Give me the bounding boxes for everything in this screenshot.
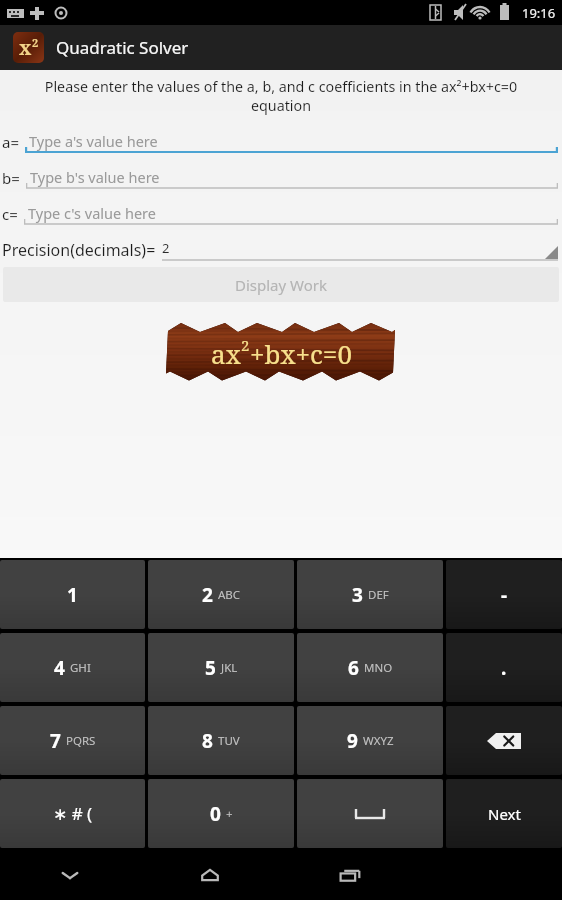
staticText: 5 [205, 655, 216, 681]
button[interactable]: ∗ # ( [0, 779, 145, 848]
staticText: c= [2, 204, 18, 224]
button[interactable]: Precision 2 [162, 234, 558, 261]
staticText: 9 [347, 728, 358, 754]
staticText: - [501, 582, 508, 608]
staticText: Type b's value here [30, 167, 160, 187]
button[interactable]: Home [140, 850, 280, 900]
staticText: ABC [218, 587, 241, 603]
button[interactable]: 3 DEF [297, 560, 443, 629]
staticText: + [226, 806, 233, 822]
staticText: Display Work [235, 275, 327, 295]
staticText: 1 [67, 582, 78, 608]
button[interactable]: 6 MNO [297, 633, 443, 702]
staticText: 2 [241, 335, 250, 355]
staticText: Precision(decimals)= [2, 239, 156, 261]
staticText: ∗ # ( [53, 802, 93, 825]
staticText: +bx+c=0 [250, 336, 352, 371]
button[interactable]: Type c's value here [24, 196, 558, 232]
button[interactable]: Recent apps [280, 850, 421, 900]
button[interactable]: 1 [0, 560, 145, 629]
staticText: 3 [352, 582, 363, 608]
button[interactable]: Hide keyboard [0, 850, 140, 900]
button[interactable]: 4 GHI [0, 633, 145, 702]
button[interactable]: 0 + [148, 779, 294, 848]
staticText: 2 [162, 239, 170, 257]
staticText: a= [2, 132, 19, 152]
button[interactable]: 2 ABC [148, 560, 294, 629]
staticText: Type a's value here [29, 131, 158, 151]
staticText: DEF [368, 587, 389, 603]
button[interactable]: 7 PQRS [0, 706, 145, 775]
staticText: GHI [70, 660, 91, 676]
staticText: MNO [364, 660, 393, 676]
staticText: 19:16 [522, 4, 556, 22]
button[interactable]: Type a's value here [25, 124, 558, 160]
staticText: Quadratic Solver [56, 36, 189, 59]
staticText: b= [2, 168, 20, 188]
staticText: Type c's value here [28, 203, 156, 223]
button[interactable]: Space [297, 779, 443, 848]
staticText: x [19, 35, 32, 61]
staticText: Next [488, 804, 521, 824]
staticText: 2 [32, 35, 39, 50]
button[interactable]: 5 JKL [148, 633, 294, 702]
staticText: 2 [202, 582, 213, 608]
button[interactable]: Display Work [3, 267, 559, 302]
staticText: PQRS [66, 733, 96, 749]
staticText: JKL [221, 660, 238, 676]
staticText: WXYZ [363, 733, 394, 749]
button[interactable]: Next [446, 779, 562, 848]
staticText: 6 [348, 655, 359, 681]
staticText: ax [211, 336, 241, 371]
staticText: . [501, 655, 507, 681]
staticText: 4 [54, 655, 65, 681]
staticText: TUV [218, 733, 240, 749]
button[interactable]: Backspace [446, 706, 562, 775]
button[interactable]: 9 WXYZ [297, 706, 443, 775]
staticText: 8 [202, 728, 213, 754]
button[interactable]: Type b's value here [26, 160, 558, 196]
staticText: 7 [50, 728, 61, 754]
staticText: Please enter the values of the a, b, and… [14, 77, 548, 115]
button[interactable]: 8 TUV [148, 706, 294, 775]
staticText: 0 [210, 801, 221, 827]
button[interactable]: . [446, 633, 562, 702]
button[interactable]: - [446, 560, 562, 629]
